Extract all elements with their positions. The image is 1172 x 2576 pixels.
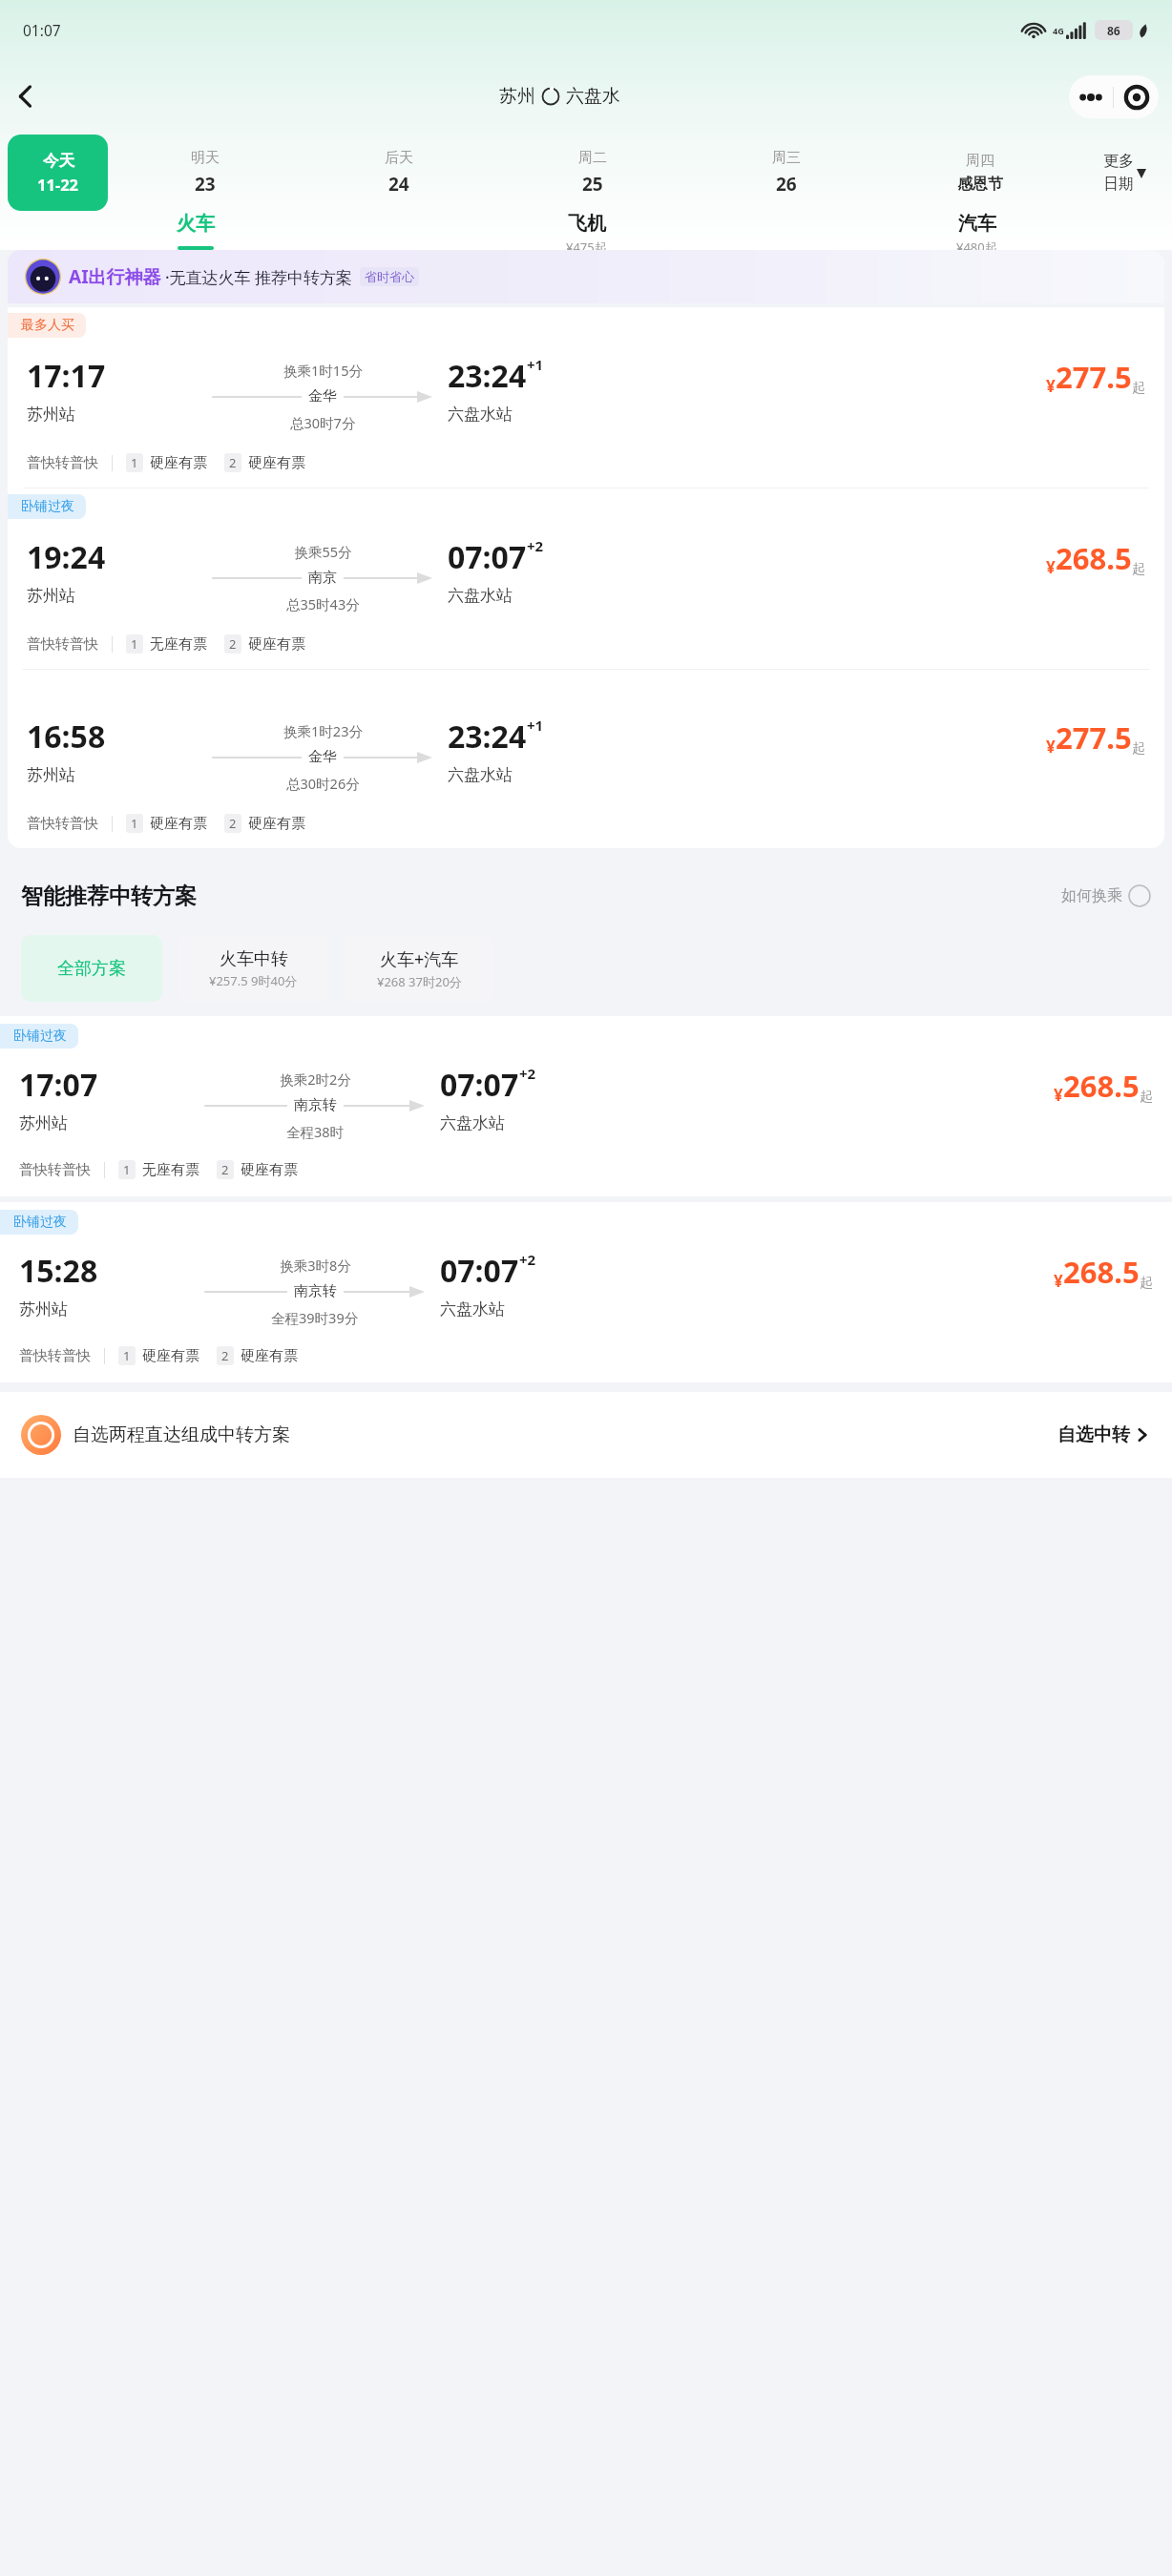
staticText: 1 (123, 1347, 131, 1364)
staticText: 火车中转 (220, 948, 288, 970)
staticText: 全部方案 (57, 958, 126, 980)
button[interactable]: 今天 (8, 135, 108, 211)
button[interactable]: 后天 (302, 134, 495, 212)
staticText: ¥268 37时20分 (377, 973, 462, 990)
staticText: 277.5 (1056, 717, 1132, 758)
button[interactable]: 周二 (495, 134, 689, 212)
staticText: 268.5 (1056, 538, 1132, 578)
staticText: 1 (123, 1161, 131, 1178)
button[interactable]: AI出行神器 (8, 250, 1164, 303)
staticText: 无座有票 (150, 635, 207, 654)
staticText: 1 (131, 454, 138, 471)
staticText: ¥ (1046, 375, 1056, 397)
staticText: 起 (1132, 561, 1145, 578)
staticText: 苏州站 (19, 1113, 68, 1133)
staticText: 卧铺过夜 (21, 498, 74, 515)
button[interactable]: 火车中转 (178, 935, 328, 1002)
button[interactable]: 卧铺过夜 (0, 1016, 1172, 1196)
staticText: +2 (519, 1064, 536, 1083)
staticText: ¥ (1054, 1270, 1063, 1292)
staticText: 明天 (191, 149, 220, 167)
staticText: 07:07 (440, 1064, 519, 1106)
button[interactable]: 周三 (689, 134, 883, 212)
staticText: 总35时43分 (286, 594, 360, 613)
staticText: 15:28 (19, 1250, 98, 1292)
staticText: 六盘水 (566, 85, 620, 108)
staticText: 更多 (1103, 152, 1134, 171)
button[interactable]: 如何换乘 (1061, 884, 1151, 907)
staticText: 2 (221, 1161, 229, 1178)
staticText: 01:07 (23, 20, 61, 40)
staticText: 苏州站 (27, 586, 75, 606)
staticText: 金华 (308, 748, 337, 766)
staticText: 19:24 (27, 536, 106, 578)
staticText: 六盘水站 (440, 1299, 505, 1319)
button[interactable]: 卧铺过夜 (8, 488, 1164, 669)
staticText: 普快转普快 (27, 635, 98, 654)
staticText: 硬座有票 (150, 815, 207, 833)
staticText: 总30时7分 (290, 413, 356, 432)
staticText: 07:07 (440, 1250, 519, 1292)
button[interactable]: 明天 (108, 134, 302, 212)
staticText: 17:17 (27, 355, 106, 397)
button[interactable]: 16:58 (8, 670, 1164, 848)
staticText: 硬座有票 (248, 635, 305, 654)
staticText: 07:07 (448, 536, 527, 578)
staticText: +2 (519, 1250, 536, 1269)
staticText: 25 (582, 172, 603, 197)
button[interactable]: 卧铺过夜 (0, 1202, 1172, 1382)
staticText: 普快转普快 (19, 1347, 91, 1365)
staticText: 2 (221, 1347, 229, 1364)
button[interactable]: 自选两程直达组成中转方案 (21, 1392, 1151, 1478)
button[interactable]: 全部方案 (21, 935, 162, 1002)
staticText: ¥475起 (566, 239, 607, 250)
staticText: 感恩节 (957, 175, 1003, 194)
staticText: 今天 (43, 151, 74, 171)
staticText: 自选中转 (1057, 1423, 1130, 1446)
staticText: 苏州站 (27, 765, 75, 785)
staticText: 起 (1132, 740, 1145, 758)
button[interactable]: Back (0, 71, 52, 122)
staticText: ·无直达火车 推荐中转方案 (165, 266, 353, 288)
staticText: 2 (229, 635, 237, 653)
button[interactable]: 最多人买 (8, 307, 1164, 488)
staticText: 换乘2时2分 (280, 1070, 351, 1089)
staticText: 苏州 (499, 85, 535, 108)
staticText: 智能推荐中转方案 (21, 883, 197, 910)
staticText: 卧铺过夜 (13, 1028, 67, 1045)
button[interactable]: Target (1114, 75, 1159, 118)
button[interactable]: 火车 (0, 212, 391, 250)
staticText: 后天 (385, 149, 413, 167)
staticText: 硬座有票 (241, 1347, 298, 1365)
button[interactable]: 飞机 (391, 212, 782, 250)
button[interactable]: 周四 (883, 134, 1077, 212)
staticText: 自选两程直达组成中转方案 (73, 1423, 290, 1446)
staticText: 1 (131, 815, 138, 832)
staticText: 268.5 (1063, 1066, 1140, 1106)
staticText: 1 (131, 635, 138, 653)
staticText: 17:07 (19, 1064, 98, 1106)
button[interactable]: 汽车 (782, 212, 1172, 250)
staticText: 金华 (308, 387, 337, 405)
staticText: 火车 (177, 212, 215, 236)
staticText: 硬座有票 (248, 815, 305, 833)
staticText: 最多人买 (21, 317, 74, 334)
staticText: 2 (229, 815, 237, 832)
staticText: 周三 (772, 149, 801, 167)
staticText: 周二 (578, 149, 607, 167)
staticText: 起 (1140, 1089, 1153, 1106)
staticText: AI出行神器 (69, 264, 161, 289)
staticText: 硬座有票 (241, 1161, 298, 1179)
button[interactable]: 火车+汽车 (344, 935, 494, 1002)
staticText: 86 (1107, 23, 1120, 38)
staticText: 卧铺过夜 (13, 1214, 67, 1231)
staticText: 2 (229, 454, 237, 471)
button[interactable]: 更多 (1077, 134, 1172, 212)
staticText: 周四 (966, 152, 994, 170)
staticText: 硬座有票 (150, 454, 207, 472)
staticText: 南京 (308, 569, 337, 587)
staticText: 如何换乘 (1061, 886, 1122, 905)
staticText: 火车+汽车 (380, 947, 459, 971)
staticText: 省时省心 (365, 269, 414, 284)
button[interactable]: More options (1069, 75, 1113, 118)
